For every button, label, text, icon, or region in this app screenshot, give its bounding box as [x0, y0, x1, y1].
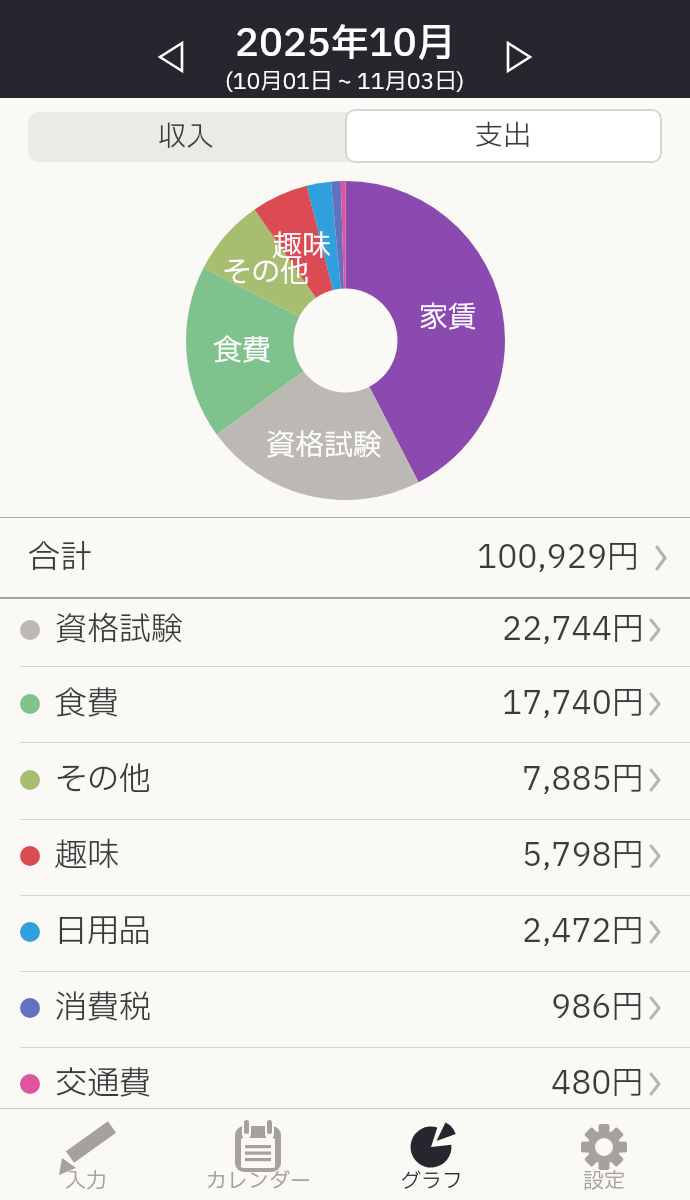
- button[interactable]: グラフ: [344, 1108, 517, 1200]
- staticText: 支出: [475, 115, 532, 157]
- button[interactable]: 収入: [28, 112, 345, 162]
- staticText: 趣味: [273, 225, 332, 268]
- staticText: 設定: [583, 1166, 625, 1194]
- button[interactable]: 交通費: [0, 1046, 690, 1122]
- button[interactable]: [147, 33, 195, 81]
- button[interactable]: 食費: [0, 666, 690, 742]
- button[interactable]: 支出: [345, 109, 662, 163]
- staticText: 2,472円: [522, 908, 644, 956]
- staticText: 消費税: [55, 984, 152, 1032]
- staticText: 100,929円: [477, 534, 640, 582]
- button[interactable]: 入力: [0, 1108, 172, 1200]
- staticText: (10月01日 ~ 11月03日): [225, 66, 465, 92]
- staticText: 食費: [213, 329, 272, 372]
- staticText: 家賃: [419, 296, 478, 339]
- button[interactable]: カレンダー: [172, 1108, 344, 1200]
- staticText: カレンダー: [206, 1166, 311, 1194]
- staticText: 986円: [551, 984, 644, 1032]
- staticText: 趣味: [55, 832, 120, 880]
- button[interactable]: 資格試験: [0, 592, 690, 668]
- button[interactable]: 趣味: [0, 818, 690, 894]
- staticText: グラフ: [400, 1166, 463, 1194]
- staticText: 資格試験: [55, 606, 184, 654]
- staticText: その他: [222, 251, 310, 294]
- staticText: 合計: [28, 534, 93, 582]
- staticText: 収入: [158, 116, 215, 158]
- staticText: 資格試験: [266, 424, 383, 467]
- button[interactable]: 設定: [517, 1108, 690, 1200]
- button[interactable]: その他: [0, 742, 690, 818]
- staticText: 22,744円: [502, 606, 644, 654]
- button[interactable]: [495, 33, 543, 81]
- staticText: 日用品: [55, 908, 152, 956]
- staticText: 2025年10月: [235, 16, 455, 72]
- staticText: その他: [55, 756, 152, 804]
- staticText: 17,740円: [502, 680, 644, 728]
- button[interactable]: 日用品: [0, 894, 690, 970]
- staticText: 480円: [551, 1060, 644, 1108]
- staticText: 7,885円: [522, 756, 644, 804]
- button[interactable]: 消費税: [0, 970, 690, 1046]
- button[interactable]: 合計: [0, 518, 690, 597]
- staticText: 入力: [65, 1166, 107, 1194]
- staticText: 食費: [55, 680, 120, 728]
- staticText: 5,798円: [522, 832, 644, 880]
- staticText: 交通費: [55, 1060, 152, 1108]
